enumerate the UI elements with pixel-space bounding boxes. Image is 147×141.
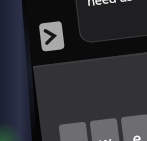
button[interactable]: Next suggestion [42,17,70,49]
button[interactable]: e key [114,106,145,141]
button[interactable]: w key [81,110,110,141]
button[interactable] [83,0,147,47]
button[interactable]: q key [52,112,81,141]
